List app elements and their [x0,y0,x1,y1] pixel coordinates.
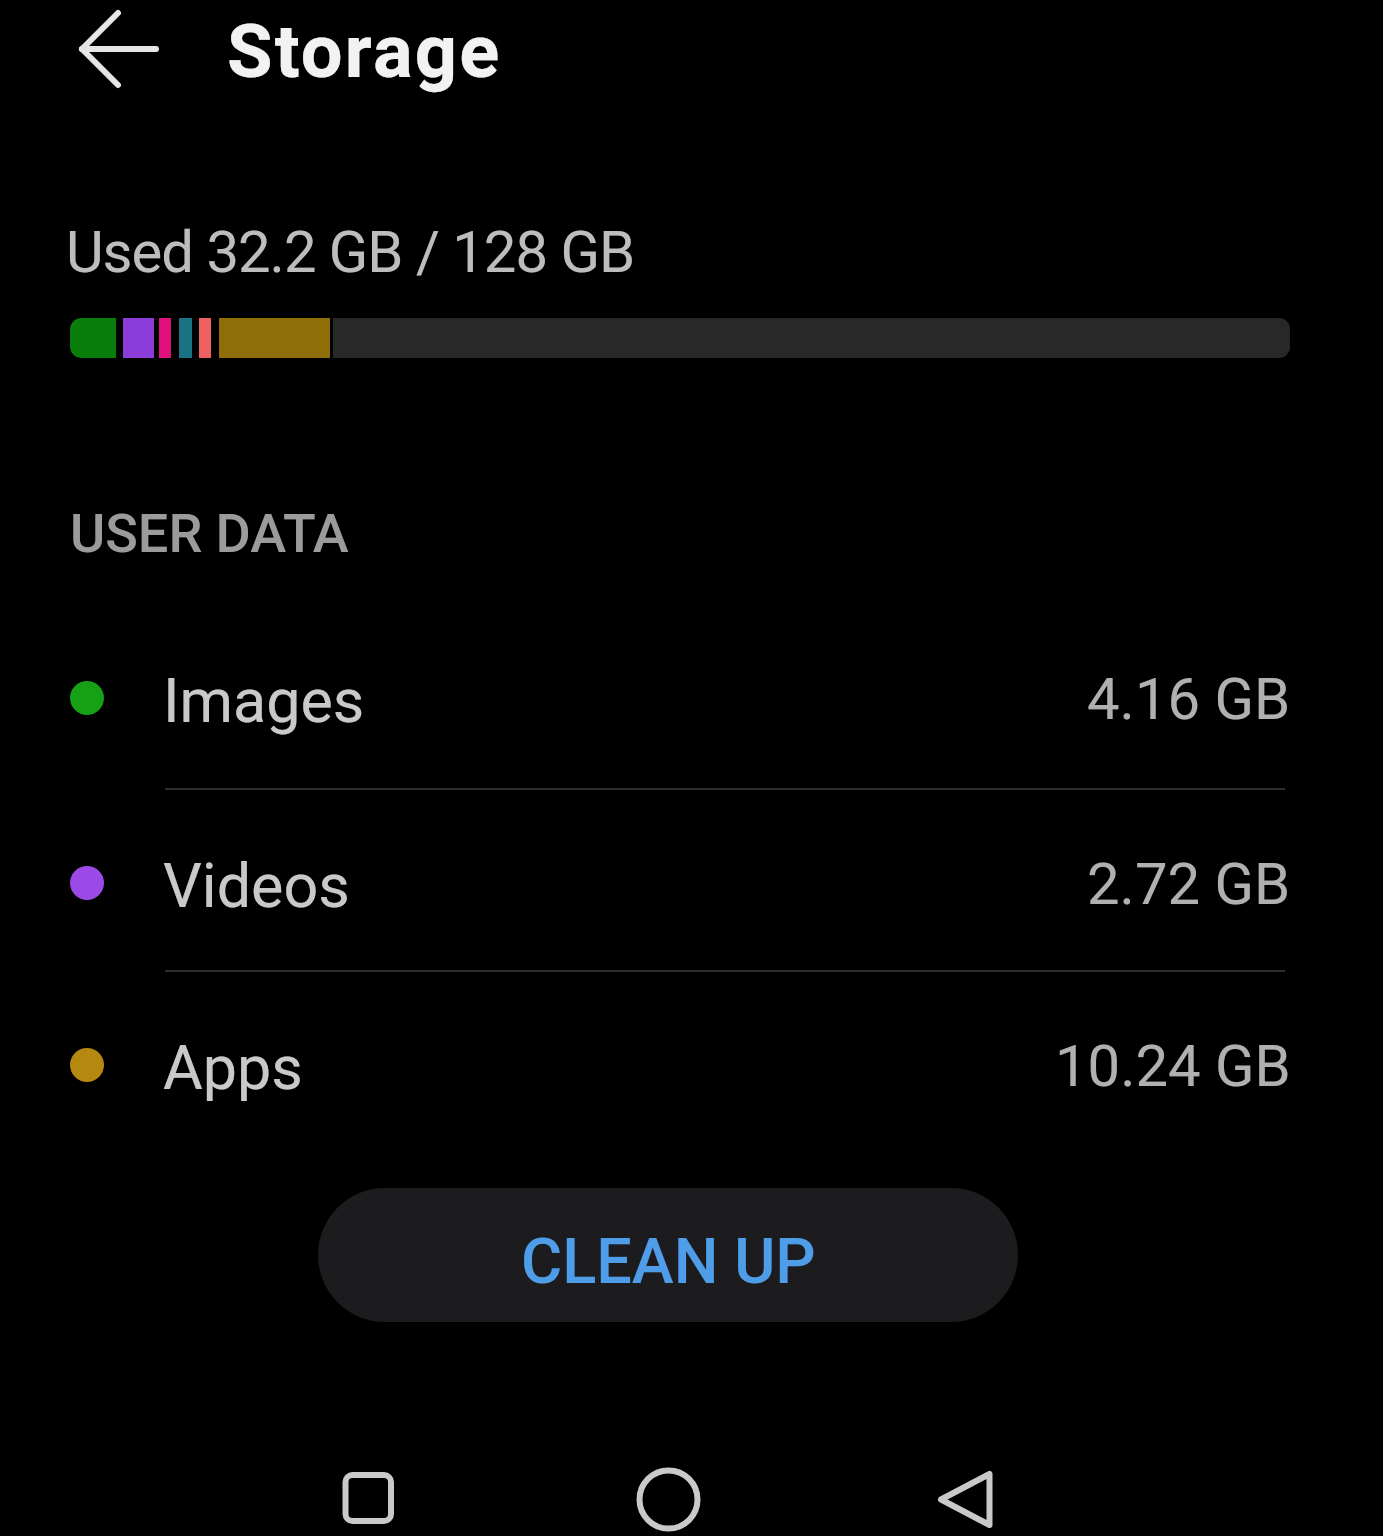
staticText: USER DATA [70,502,349,565]
staticText: Storage [227,8,502,95]
staticText: 2.72 GB [1087,850,1291,918]
button[interactable] [56,4,176,96]
staticText: 4.16 GB [1087,665,1291,733]
button[interactable]: Videos [0,803,1383,963]
staticText: Apps [163,1032,303,1103]
button[interactable]: Images [0,618,1383,778]
button[interactable] [630,1460,706,1536]
button[interactable] [330,1460,406,1536]
staticText: 10.24 GB [1055,1032,1291,1100]
staticText: Used 32.2 GB / 128 GB [66,218,635,286]
staticText: CLEAN UP [521,1225,816,1299]
button[interactable]: Apps [0,985,1383,1145]
staticText: Images [163,665,365,736]
button[interactable] [928,1460,1004,1536]
staticText: Videos [163,850,350,921]
button[interactable]: CLEAN UP [318,1188,1018,1322]
